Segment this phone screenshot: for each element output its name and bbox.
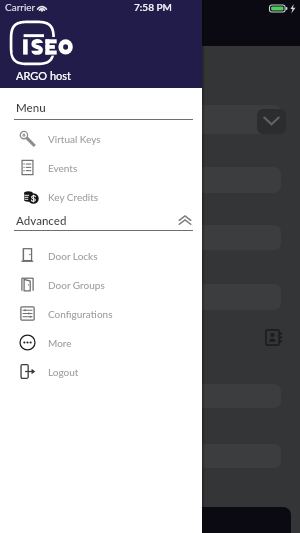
staticText: Key Credits <box>48 191 99 203</box>
staticText: More <box>48 337 72 349</box>
button[interactable]: Events <box>0 153 202 182</box>
button[interactable]: Contacts <box>264 328 283 347</box>
staticText: 7:58 PM <box>134 1 172 13</box>
button[interactable]: Logout <box>0 357 202 386</box>
staticText: Door Locks <box>48 250 98 262</box>
button[interactable]: Expand <box>257 109 286 134</box>
staticText: Logout <box>48 366 79 378</box>
staticText: Events <box>48 162 78 174</box>
button[interactable]: Collapse Advanced <box>176 212 194 230</box>
button[interactable]: Door Groups <box>0 270 202 299</box>
button[interactable]: Virtual Keys <box>0 124 202 153</box>
staticText: Door Groups <box>48 279 105 291</box>
staticText: Advanced <box>16 214 67 228</box>
staticText: ARGO host <box>16 69 72 82</box>
staticText: Carrier <box>5 1 36 13</box>
button[interactable]: Door Locks <box>0 241 202 270</box>
button[interactable]: Configurations <box>0 299 202 328</box>
staticText: Menu <box>16 101 46 115</box>
button[interactable]: Key Credits <box>0 182 202 211</box>
staticText: Configurations <box>48 308 113 320</box>
staticText: Virtual Keys <box>48 133 101 145</box>
button[interactable]: More <box>0 328 202 357</box>
